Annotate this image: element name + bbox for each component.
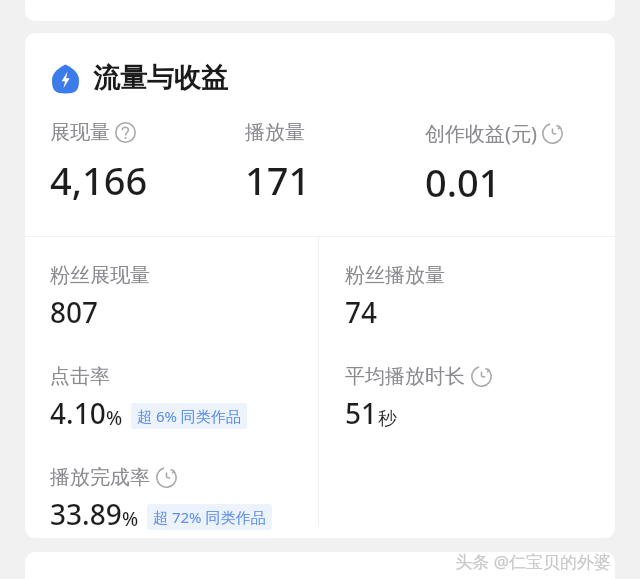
staticText: %: [122, 506, 139, 532]
staticText: 74: [345, 293, 378, 331]
button[interactable]: 播放完成率: [50, 465, 318, 533]
button[interactable]: 粉丝展现量: [50, 263, 318, 331]
staticText: %: [106, 405, 123, 431]
button[interactable]: 点击率: [50, 364, 318, 432]
button[interactable]: 超 6% 同类作品: [131, 403, 247, 429]
staticText: 51: [345, 394, 378, 432]
staticText: 流量与收益: [93, 61, 228, 95]
staticText: 粉丝展现量: [50, 263, 150, 288]
button[interactable]: Delayed data: [471, 366, 492, 387]
staticText: 展现量: [50, 120, 110, 145]
button[interactable]: 平均播放时长: [345, 364, 615, 432]
button[interactable]: 超 72% 同类作品: [147, 504, 272, 530]
staticText: 播放完成率: [50, 465, 150, 490]
button[interactable]: 流量与收益: [25, 33, 615, 95]
staticText: 平均播放时长: [345, 364, 465, 389]
button[interactable]: Delayed data: [156, 467, 177, 488]
staticText: 171: [245, 154, 311, 206]
staticText: 4.10: [50, 394, 106, 432]
staticText: 创作收益(元): [425, 120, 537, 147]
staticText: 807: [50, 293, 99, 331]
button[interactable]: More info: [115, 122, 136, 143]
button[interactable]: 创作收益(元): [425, 120, 610, 208]
staticText: 超 72% 同类作品: [153, 507, 266, 527]
staticText: 秒: [378, 407, 397, 431]
button[interactable]: 粉丝播放量: [345, 263, 615, 331]
staticText: 头条 @仁宝贝的外婆: [455, 550, 611, 573]
staticText: 粉丝播放量: [345, 263, 445, 288]
staticText: 33.89: [50, 495, 122, 533]
staticText: 点击率: [50, 364, 110, 389]
button[interactable]: 播放量: [245, 120, 425, 206]
button[interactable]: 展现量: [50, 120, 245, 206]
staticText: 4,166: [50, 154, 148, 206]
staticText: 播放量: [245, 120, 305, 145]
staticText: 0.01: [425, 156, 501, 208]
button[interactable]: Delayed data: [542, 123, 563, 144]
staticText: 超 6% 同类作品: [137, 406, 241, 426]
